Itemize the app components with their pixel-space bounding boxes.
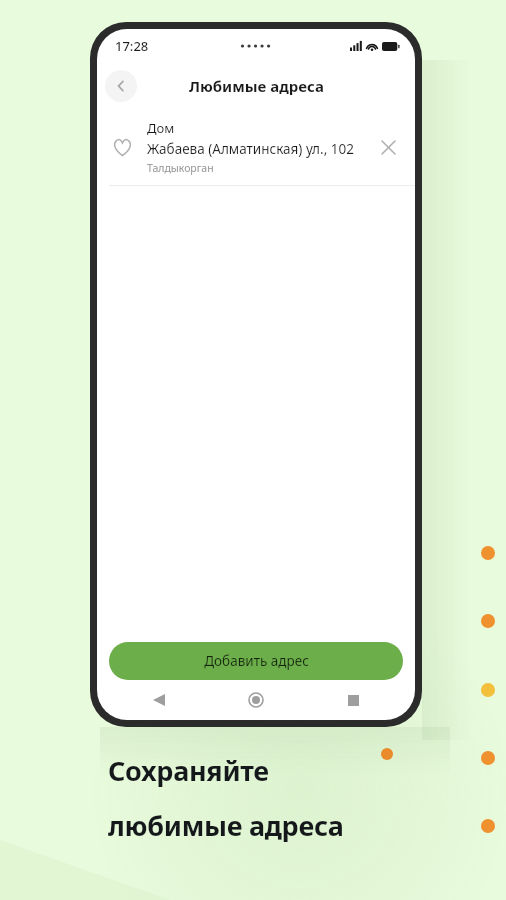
staticText: Дом <box>147 119 175 137</box>
button[interactable]: Обзор <box>339 686 367 714</box>
staticText: любимые адреса <box>108 807 344 844</box>
button[interactable]: Назад <box>145 686 173 714</box>
staticText: Любимые адреса <box>189 76 324 96</box>
staticText: Жабаева (Алматинская) ул., 102 <box>147 140 354 158</box>
button[interactable]: Домой <box>242 686 270 714</box>
button[interactable]: Добавить адрес <box>109 642 403 680</box>
button[interactable]: Назад <box>105 70 137 102</box>
button[interactable]: Избранное <box>97 109 415 185</box>
staticText: 17:28 <box>115 37 149 55</box>
button[interactable]: Избранное <box>109 134 135 160</box>
button[interactable]: Удалить <box>375 134 401 160</box>
staticText: Талдыкорган <box>147 161 214 175</box>
staticText: Сохраняйте <box>108 752 269 789</box>
staticText: Добавить адрес <box>204 652 309 670</box>
